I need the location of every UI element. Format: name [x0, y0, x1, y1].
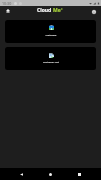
staticText: Me: [53, 7, 61, 14]
button[interactable]: Recent apps: [73, 168, 86, 180]
staticText: 10:30: [2, 1, 12, 6]
button[interactable]: Settings: [88, 6, 99, 17]
staticText: Cloud: [37, 7, 53, 14]
button[interactable]: Home: [2, 5, 13, 16]
button[interactable]: Customer: [5, 20, 96, 43]
staticText: Customer List: [43, 61, 59, 64]
button[interactable]: Back: [15, 168, 28, 180]
button[interactable]: Home: [44, 168, 57, 180]
button[interactable]: Customer List: [5, 47, 96, 70]
staticText: °: [61, 7, 63, 12]
staticText: Customer: [45, 34, 57, 37]
